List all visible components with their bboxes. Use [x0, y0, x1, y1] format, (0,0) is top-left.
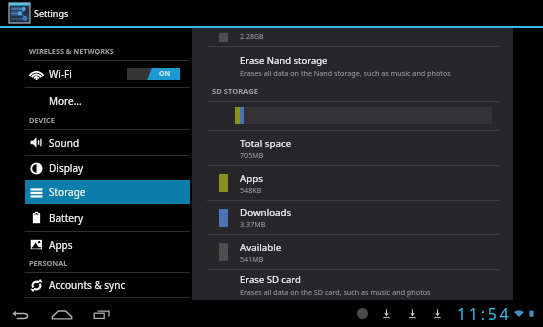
staticText: Accounts & sync	[49, 278, 126, 292]
button[interactable]: Recent apps	[89, 300, 116, 327]
button[interactable]: Total space	[192, 131, 513, 165]
staticText: DEVICE	[29, 115, 55, 125]
staticText: SD STORAGE	[212, 86, 258, 96]
staticText: Display	[49, 161, 84, 175]
button[interactable]: More...	[25, 88, 190, 114]
staticText: Available	[240, 241, 282, 254]
button[interactable]: Erase Nand storage	[192, 47, 513, 84]
staticText: Wi-Fi	[49, 67, 72, 81]
button[interactable]: Erase SD card	[192, 270, 513, 300]
button[interactable]: Apps	[192, 166, 513, 200]
button[interactable]: Storage	[25, 180, 190, 204]
button[interactable]: Home	[48, 300, 75, 327]
staticText: Erase SD card	[240, 273, 301, 286]
button[interactable]: Wi-Fi	[25, 61, 190, 87]
staticText: 2.28GB	[240, 32, 264, 42]
staticText: 11:54	[457, 303, 512, 325]
staticText: WIRELESS & NETWORKS	[29, 46, 114, 56]
staticText: Battery	[49, 211, 84, 225]
staticText: Storage	[49, 185, 86, 199]
staticText: ON	[159, 69, 171, 79]
staticText: 548KB	[240, 185, 262, 195]
button[interactable]: Accounts & sync	[25, 273, 190, 297]
button[interactable]: Sound	[25, 130, 190, 155]
staticText: Apps	[49, 238, 73, 252]
button[interactable]: Back	[7, 300, 34, 327]
staticText: Downloads	[240, 206, 292, 219]
button[interactable]: Apps	[25, 232, 190, 257]
button[interactable]: Available	[192, 235, 513, 269]
staticText: 3.37MB	[240, 219, 266, 229]
button[interactable]: Downloads	[192, 201, 513, 234]
staticText: Apps	[240, 172, 264, 185]
staticText: 705MB	[240, 150, 264, 160]
staticText: Erases all data on the SD card, such as …	[240, 287, 431, 297]
staticText: Erases all data on the Nand storage, suc…	[240, 68, 451, 78]
staticText: Erase Nand storage	[240, 54, 328, 67]
staticText: Settings	[34, 7, 69, 19]
button[interactable]: Battery	[25, 204, 190, 231]
staticText: Sound	[49, 136, 80, 150]
staticText: Total space	[240, 137, 292, 150]
staticText: More...	[49, 94, 82, 108]
button[interactable]: Display	[25, 156, 190, 180]
staticText: PERSONAL	[29, 258, 68, 268]
staticText: 541MB	[240, 254, 264, 264]
